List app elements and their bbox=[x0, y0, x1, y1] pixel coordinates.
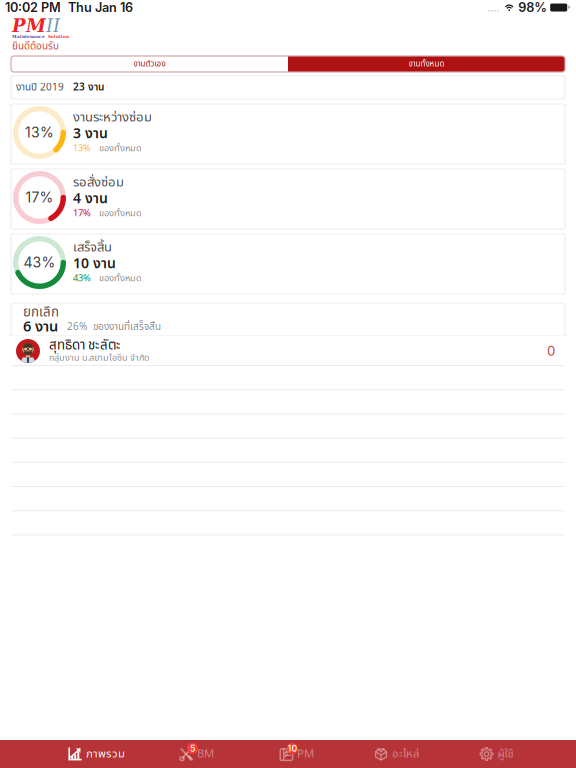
staticText: 43% bbox=[73, 271, 91, 285]
staticText: Thu Jan 16 bbox=[68, 0, 133, 15]
staticText: 10 งาน bbox=[73, 253, 116, 275]
button[interactable]: 10 bbox=[279, 740, 314, 768]
staticText: II bbox=[46, 15, 60, 36]
staticText: ยินดีต้อนรับ bbox=[12, 39, 59, 54]
button[interactable]: 5 bbox=[179, 740, 214, 768]
staticText: 6 งาน bbox=[23, 316, 58, 338]
staticText: ของทั้งหมด bbox=[99, 271, 142, 285]
staticText: 4 งาน bbox=[73, 188, 108, 210]
staticText: Maintenance bbox=[12, 34, 45, 39]
button[interactable]: ภาพรวม bbox=[68, 740, 125, 768]
staticText: สุทธิดา ชะลัตะ bbox=[49, 335, 121, 355]
button[interactable]: 43% bbox=[11, 234, 565, 294]
button[interactable]: งานปี 2019 bbox=[11, 76, 565, 99]
staticText: งานปี 2019 bbox=[16, 80, 64, 95]
staticText: 13% bbox=[73, 141, 91, 155]
staticText: PM bbox=[12, 15, 46, 36]
button[interactable]: สุทธิดา ชะลัตะ bbox=[11, 336, 565, 366]
staticText: BM bbox=[197, 745, 214, 762]
staticText: PM bbox=[297, 745, 314, 762]
staticText: 3 งาน bbox=[73, 123, 108, 145]
staticText: 23 งาน bbox=[73, 80, 104, 95]
staticText: อะไหล่ bbox=[392, 745, 419, 762]
staticText: เสร็จสิ้น bbox=[73, 238, 112, 257]
staticText: 0 bbox=[547, 343, 555, 359]
button[interactable]: อะไหล่ bbox=[374, 740, 419, 768]
button[interactable]: ผู้ใช้ bbox=[479, 740, 513, 768]
staticText: ภาพรวม bbox=[86, 745, 125, 762]
staticText: 17% bbox=[73, 206, 91, 220]
button[interactable]: 17% bbox=[11, 169, 565, 229]
staticText: งานระหว่างซ่อม bbox=[73, 108, 152, 127]
staticText: 13% bbox=[25, 124, 54, 141]
button[interactable]: 13% bbox=[11, 104, 565, 164]
staticText: กลุ่มงาน บ.สยามไอซิน จำกัด bbox=[49, 351, 150, 365]
staticText: ยกเลิก bbox=[23, 302, 59, 322]
staticText: ของทั้งหมด bbox=[99, 206, 142, 220]
staticText: .... bbox=[487, 1, 499, 14]
staticText: 43% bbox=[23, 254, 55, 271]
staticText: งานทั้งหมด bbox=[408, 58, 444, 70]
staticText: Solution bbox=[48, 34, 69, 39]
staticText: 26% bbox=[67, 319, 87, 334]
button[interactable]: งานตัวเอง bbox=[11, 56, 288, 72]
staticText: ของทั้งหมด bbox=[99, 141, 142, 155]
staticText: 10 bbox=[287, 743, 297, 754]
button[interactable]: งานทั้งหมด bbox=[288, 56, 565, 72]
staticText: 98% bbox=[518, 0, 547, 15]
button[interactable]: ยกเลิก bbox=[11, 303, 565, 336]
staticText: 17% bbox=[25, 189, 53, 206]
staticText: 10:02 PM bbox=[5, 0, 61, 15]
staticText: ผู้ใช้ bbox=[497, 745, 513, 762]
staticText: รอสั่งซ่อม bbox=[73, 173, 124, 192]
staticText: 5 bbox=[190, 743, 195, 754]
staticText: ของงานที่เสร็จสิ้น bbox=[93, 319, 161, 334]
staticText: งานตัวเอง bbox=[133, 58, 165, 70]
